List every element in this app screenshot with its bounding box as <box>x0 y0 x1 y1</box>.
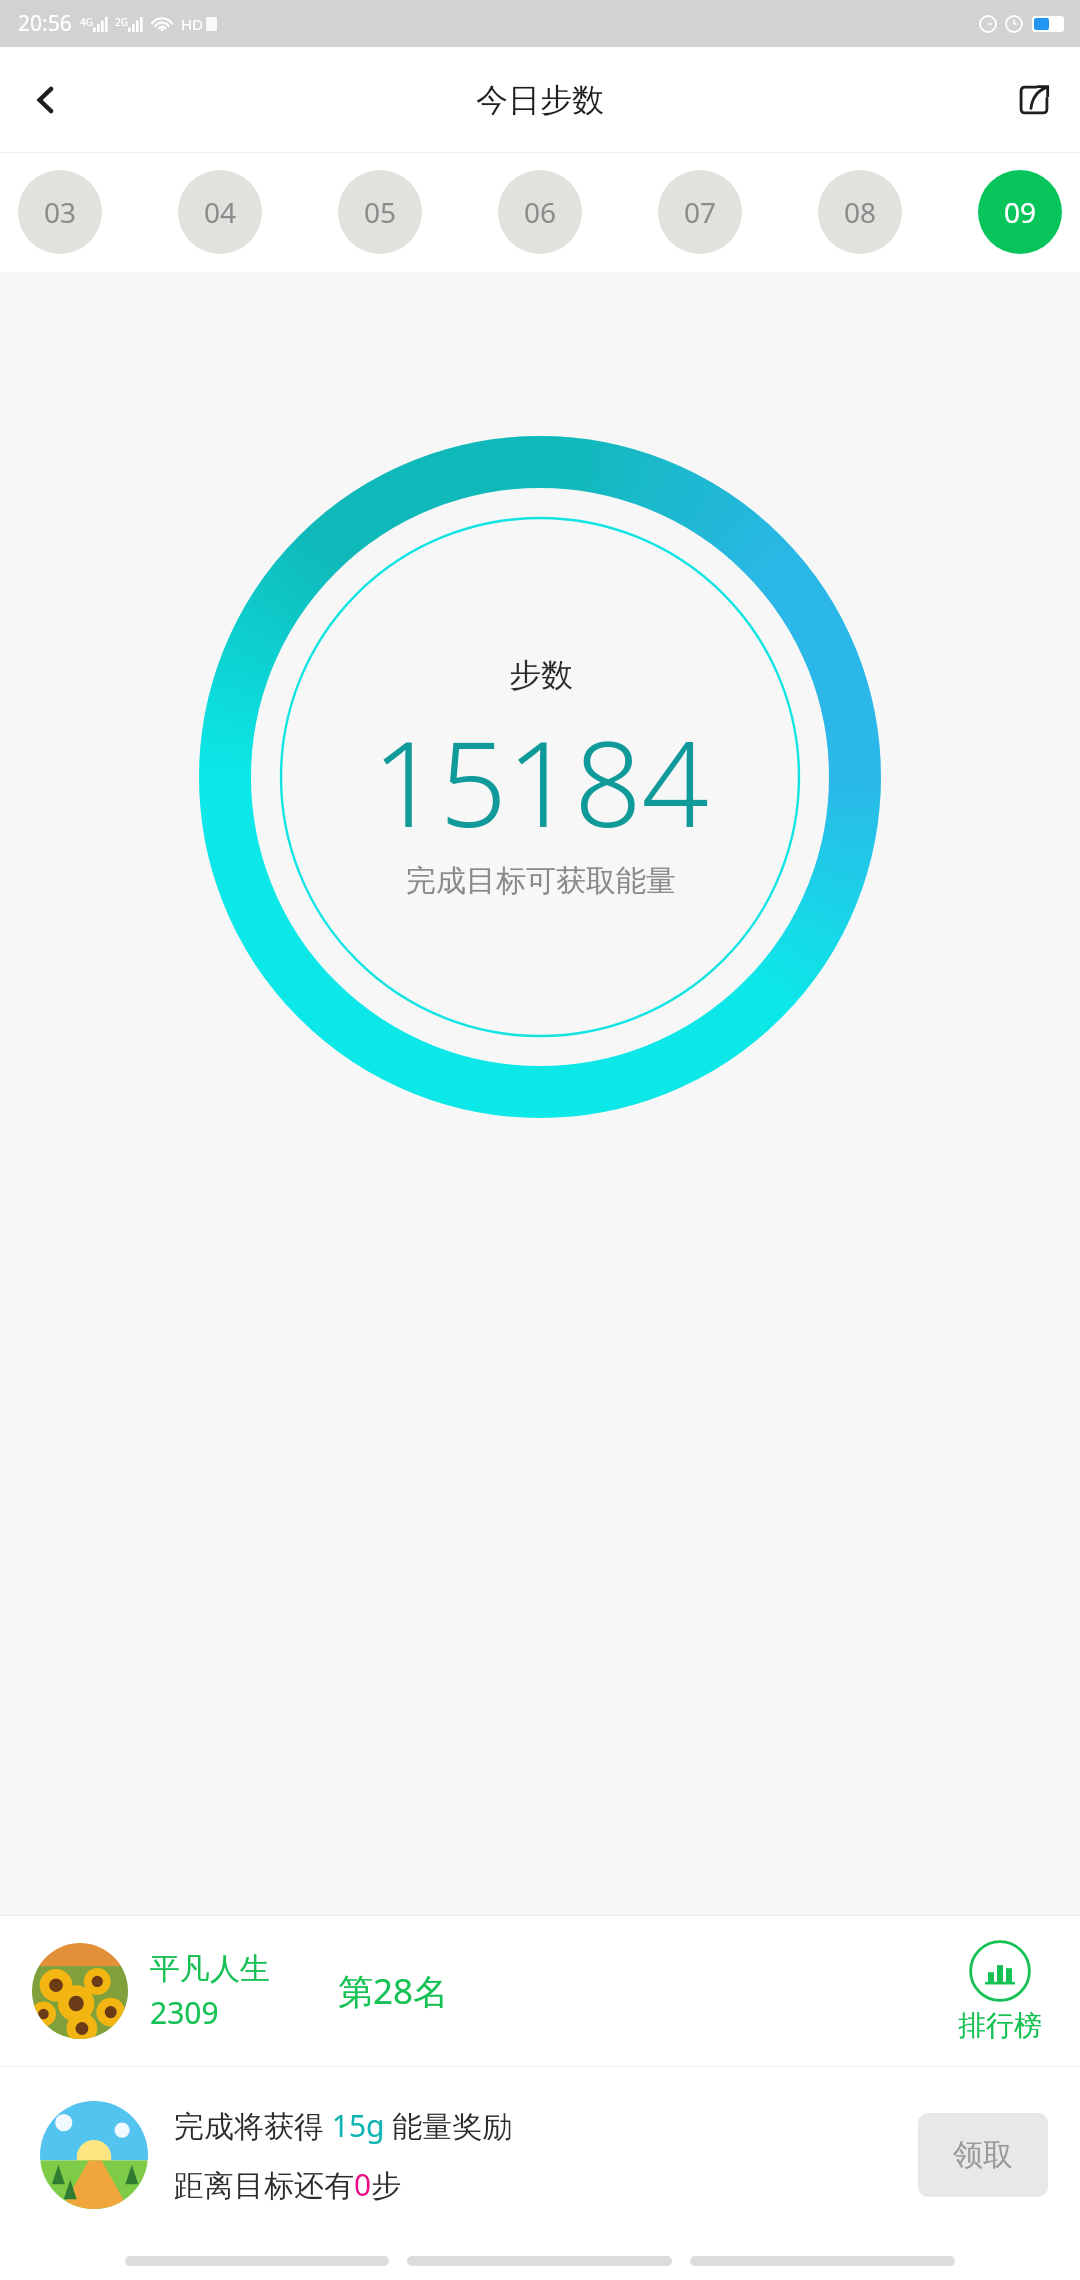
staticText: 4G <box>80 15 93 29</box>
button[interactable]: 09 <box>978 170 1062 254</box>
staticText: 步数 <box>509 655 573 695</box>
button[interactable]: 领取 <box>918 2113 1048 2197</box>
staticText: 领取 <box>953 2136 1013 2174</box>
staticText: 05 <box>364 193 397 231</box>
button[interactable]: 08 <box>818 170 902 254</box>
button[interactable]: 07 <box>658 170 742 254</box>
staticText: 2G <box>115 15 128 29</box>
staticText: 完成将获得 15g 能量奖励 <box>174 2105 513 2146</box>
staticText: 2309 <box>150 1992 219 2033</box>
button[interactable]: 03 <box>18 170 102 254</box>
staticText: 15184 <box>372 701 709 862</box>
staticText: 08 <box>844 193 877 231</box>
button[interactable]: 04 <box>178 170 262 254</box>
staticText: 完成目标可获取能量 <box>406 862 676 900</box>
button[interactable]: Back <box>0 54 92 146</box>
staticText: 排行榜 <box>958 2008 1042 2043</box>
button[interactable]: Share <box>988 54 1080 146</box>
staticText: 第28名 <box>338 1967 449 2015</box>
staticText: 03 <box>44 193 77 231</box>
button[interactable]: 05 <box>338 170 422 254</box>
staticText: 07 <box>684 193 717 231</box>
staticText: 平凡人生 <box>150 1950 270 1988</box>
staticText: 20:56 <box>18 9 72 38</box>
button[interactable]: 06 <box>498 170 582 254</box>
staticText: 今日步数 <box>476 80 604 120</box>
staticText: 09 <box>1004 193 1037 231</box>
staticText: 距离目标还有0步 <box>174 2164 402 2205</box>
staticText: HD <box>181 14 204 34</box>
button[interactable]: 平凡人生 <box>0 1916 1080 2066</box>
button[interactable]: 排行榜 <box>952 1940 1048 2043</box>
staticText: 04 <box>204 193 237 231</box>
staticText: 06 <box>524 193 557 231</box>
